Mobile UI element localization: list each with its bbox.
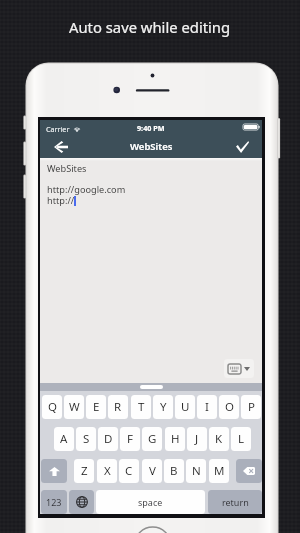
staticText: space [138, 496, 163, 508]
button[interactable]: E [86, 395, 106, 419]
button[interactable]: C [119, 459, 139, 483]
staticText: P [248, 399, 255, 415]
button[interactable]: U [175, 395, 195, 419]
staticText: X [104, 463, 111, 479]
button[interactable]: T [131, 395, 151, 419]
staticText: C [125, 463, 133, 479]
staticText: V [149, 463, 156, 479]
button[interactable]: D [98, 427, 118, 451]
button[interactable]: X [97, 459, 117, 483]
staticText: G [148, 431, 157, 447]
staticText: Carrier [46, 124, 70, 134]
button[interactable]: J [187, 427, 207, 451]
button[interactable]: Change keyboard [69, 490, 94, 514]
staticText: S [83, 431, 90, 447]
button[interactable]: Done [229, 136, 255, 158]
button[interactable]: H [165, 427, 185, 451]
button[interactable]: O [219, 395, 239, 419]
staticText: M [214, 463, 225, 479]
button[interactable]: L [231, 427, 251, 451]
staticText: H [171, 431, 180, 447]
button[interactable]: Y [153, 395, 173, 419]
staticText: A [60, 431, 68, 447]
staticText: R [114, 399, 122, 415]
button[interactable]: F [120, 427, 140, 451]
button[interactable]: I [197, 395, 217, 419]
staticText: B [170, 463, 178, 479]
staticText: E [93, 399, 100, 415]
button[interactable]: 123 [41, 490, 67, 514]
staticText: N [192, 463, 201, 479]
staticText: I [205, 399, 209, 415]
button[interactable]: Back [47, 136, 75, 158]
staticText: WebSites [47, 162, 87, 175]
button[interactable]: return [208, 490, 262, 514]
button[interactable]: P [241, 395, 261, 419]
staticText: 123 [46, 496, 62, 508]
staticText: Y [160, 399, 167, 415]
button[interactable]: Shift [41, 459, 67, 483]
button[interactable]: V [142, 459, 162, 483]
button[interactable]: Backspace [236, 459, 262, 483]
button[interactable]: R [108, 395, 128, 419]
button[interactable]: Hide keyboard [224, 359, 254, 378]
button[interactable]: space [96, 490, 205, 514]
staticText: WebSites [130, 140, 173, 153]
button[interactable]: Q [42, 395, 62, 419]
staticText: O [225, 399, 234, 415]
staticText: Z [81, 463, 88, 479]
button[interactable]: M [209, 459, 229, 483]
staticText: T [138, 399, 145, 415]
staticText: W [69, 399, 80, 415]
staticText: http://google.com http:// [47, 183, 126, 207]
staticText: 9:40 PM [137, 123, 165, 133]
button[interactable]: G [142, 427, 162, 451]
button[interactable]: A [54, 427, 74, 451]
button[interactable]: S [76, 427, 96, 451]
staticText: Auto save while editing [69, 17, 231, 37]
button[interactable]: B [164, 459, 184, 483]
button[interactable]: Z [74, 459, 94, 483]
staticText: L [238, 431, 245, 447]
staticText: F [127, 431, 133, 447]
staticText: Q [48, 399, 57, 415]
staticText: K [215, 431, 223, 447]
staticText: J [195, 431, 199, 447]
staticText: U [181, 399, 190, 415]
button[interactable]: K [209, 427, 229, 451]
button[interactable]: W [64, 395, 84, 419]
staticText: return [222, 496, 249, 508]
staticText: D [104, 431, 113, 447]
button[interactable]: N [186, 459, 206, 483]
